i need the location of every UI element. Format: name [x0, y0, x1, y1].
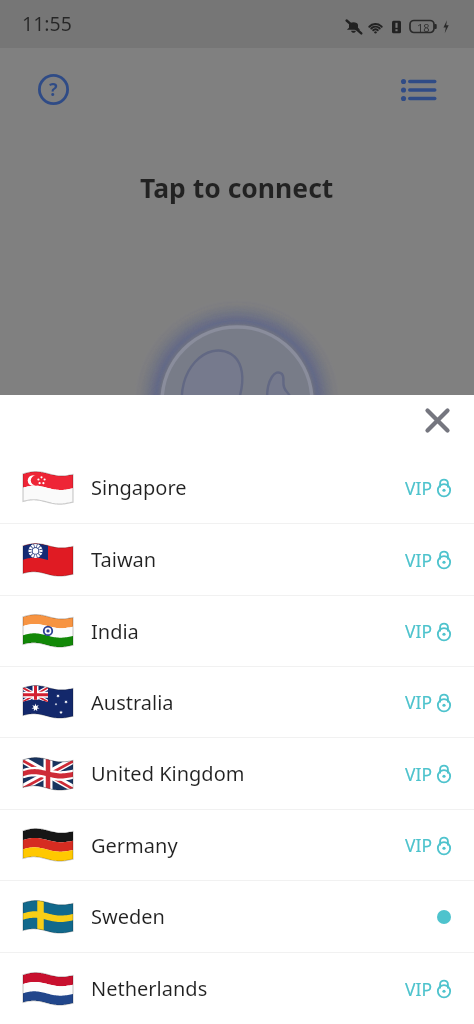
- button[interactable]: Sweden: [0, 881, 474, 953]
- staticText: Netherlands: [91, 975, 208, 1002]
- button[interactable]: Singapore: [0, 452, 474, 524]
- staticText: ?: [49, 77, 58, 102]
- staticText: VIP: [405, 762, 433, 786]
- button[interactable]: United Kingdom: [0, 738, 474, 810]
- button[interactable]: Australia: [0, 667, 474, 738]
- staticText: Sweden: [91, 903, 165, 930]
- staticText: VIP: [405, 977, 433, 1001]
- staticText: India: [91, 618, 139, 645]
- button[interactable]: Taiwan: [0, 524, 474, 596]
- staticText: VIP: [405, 690, 433, 714]
- staticText: Tap to connect: [140, 170, 334, 206]
- staticText: 18: [417, 20, 430, 33]
- staticText: Germany: [91, 832, 178, 859]
- staticText: Australia: [91, 689, 174, 716]
- staticText: Taiwan: [91, 546, 157, 573]
- button[interactable]: Close: [417, 400, 457, 440]
- staticText: VIP: [405, 619, 433, 643]
- staticText: United Kingdom: [91, 760, 245, 787]
- staticText: 11:55: [22, 10, 72, 37]
- staticText: VIP: [405, 476, 433, 500]
- staticText: VIP: [405, 548, 433, 572]
- button[interactable]: Netherlands: [0, 953, 474, 1024]
- button[interactable]: Help: [31, 67, 76, 112]
- button[interactable]: Germany: [0, 810, 474, 881]
- button[interactable]: India: [0, 596, 474, 667]
- button[interactable]: Server list: [392, 67, 445, 112]
- staticText: Singapore: [91, 474, 187, 501]
- staticText: VIP: [405, 833, 433, 857]
